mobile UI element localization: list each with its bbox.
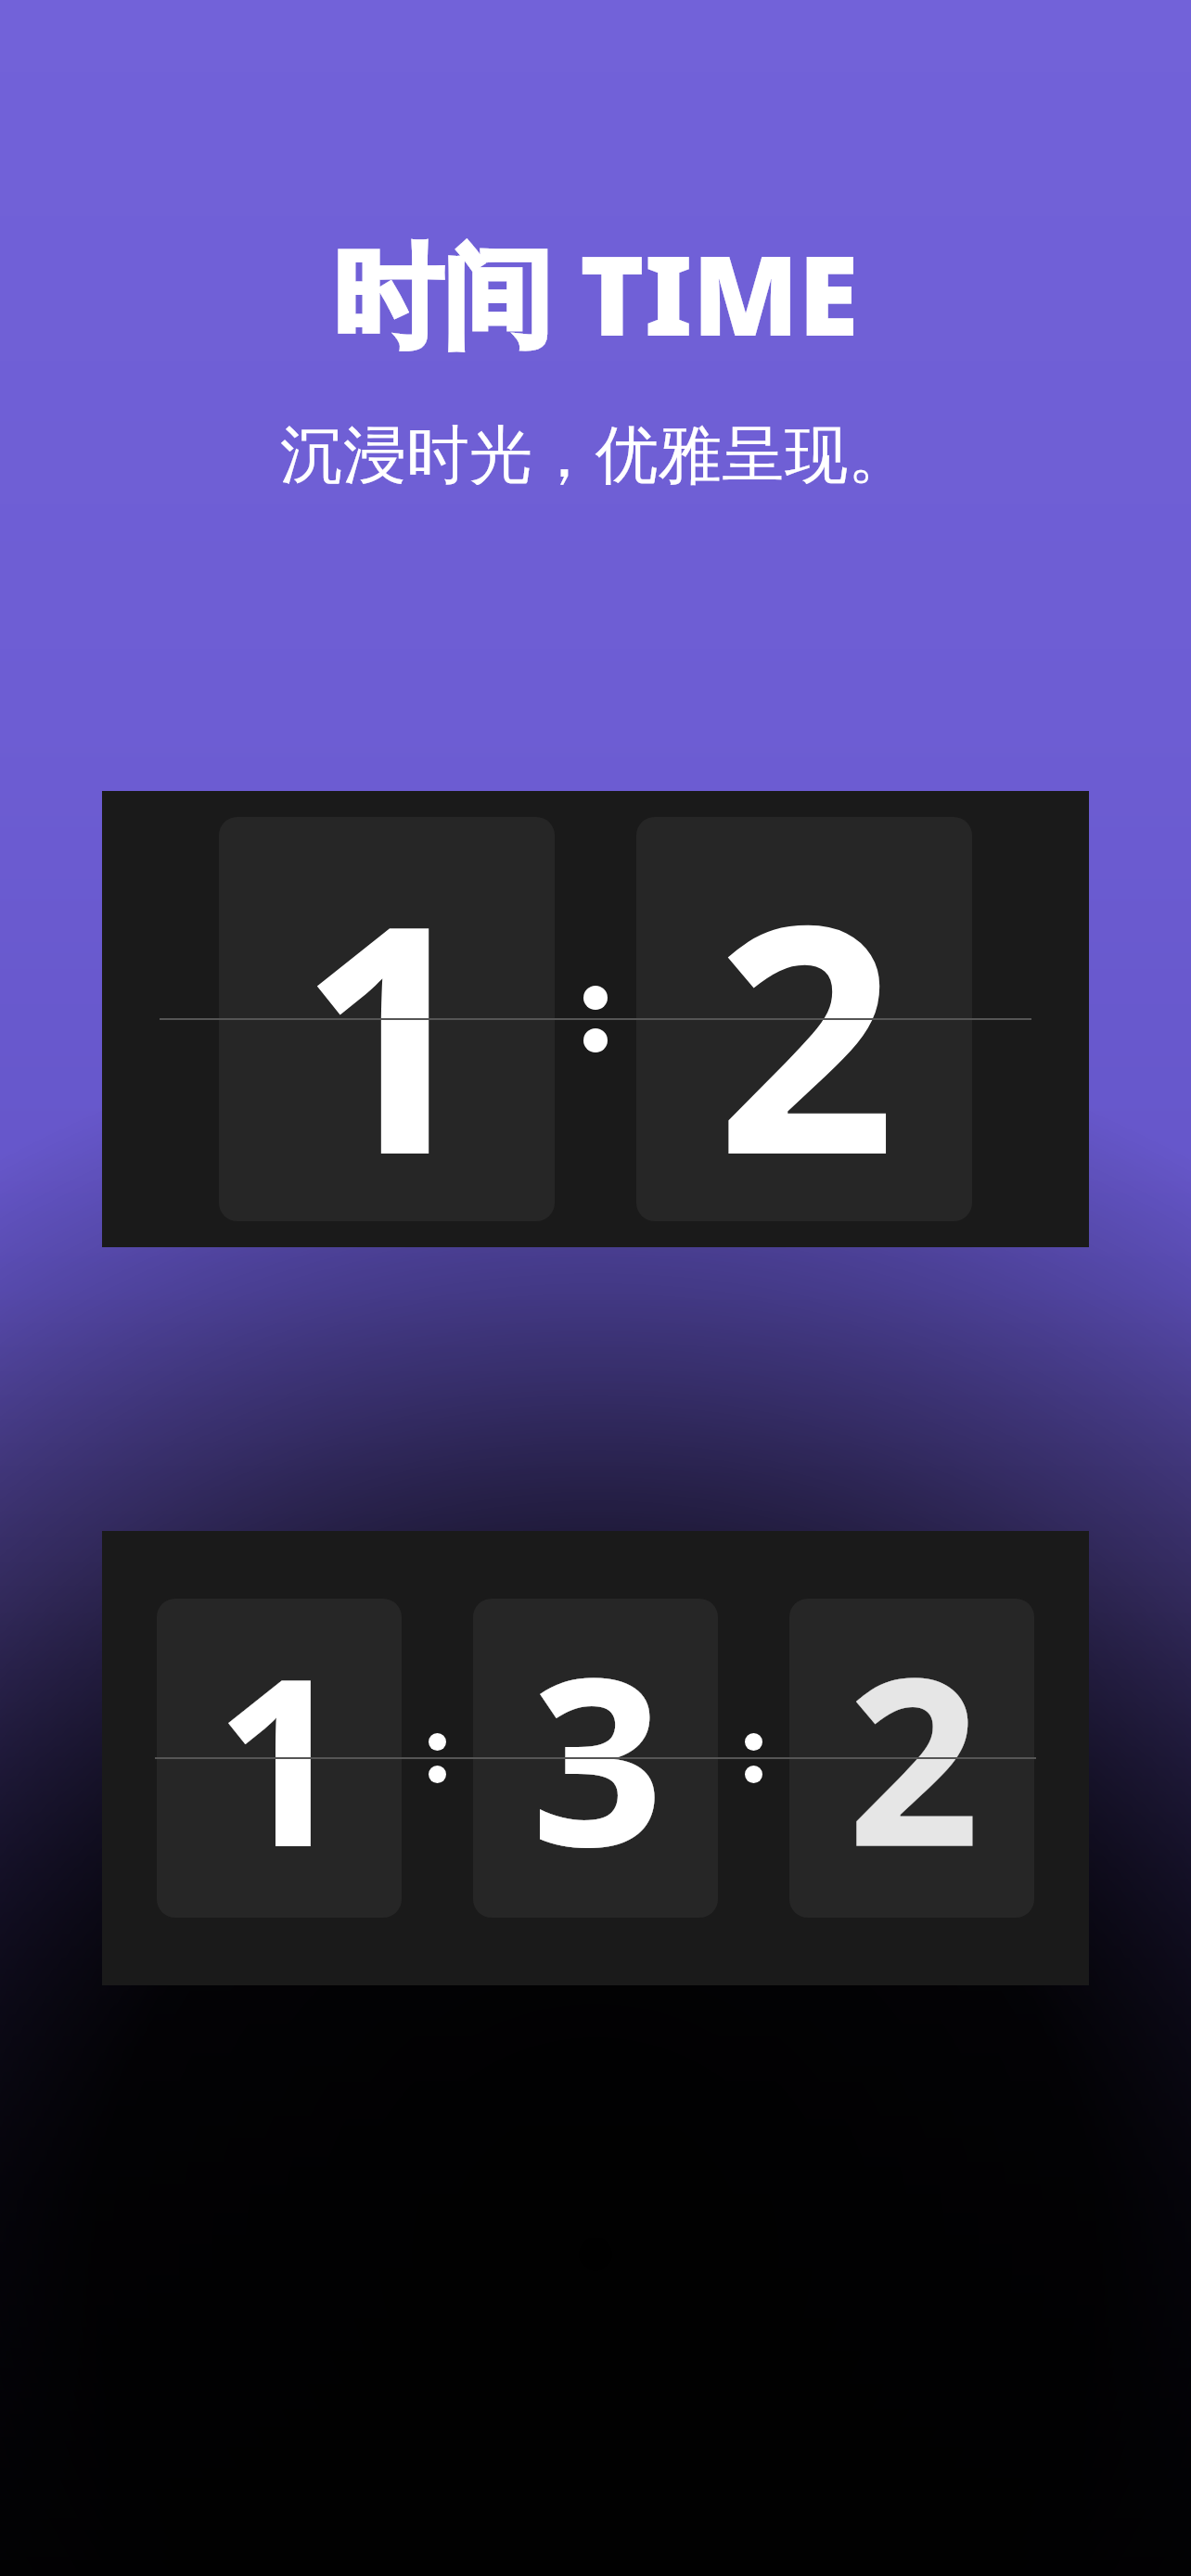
staticText: 时间 TIME	[332, 219, 859, 368]
button[interactable]: Flip digits 19	[157, 1599, 402, 1918]
staticText: 24	[789, 1599, 1034, 1918]
button[interactable]: Flip digits 20	[636, 817, 972, 1221]
staticText: 20	[636, 817, 972, 1221]
button[interactable]: Flip digits 19	[102, 791, 1089, 1247]
staticText: 沉浸时光，优雅呈现。	[280, 416, 911, 496]
button[interactable]: Flip digits 19	[102, 1531, 1089, 1985]
button[interactable]: Flip digits 30	[473, 1599, 718, 1918]
button[interactable]: Flip digits 19	[219, 817, 555, 1221]
staticText: 19	[157, 1599, 402, 1918]
staticText: 19	[219, 817, 555, 1221]
staticText: 30	[473, 1599, 718, 1918]
button[interactable]: Flip digits 24	[789, 1599, 1034, 1918]
